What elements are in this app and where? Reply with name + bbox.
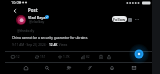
staticText: 10:09 xyxy=(11,0,21,5)
staticText: 9:11 AM · Sep 23, 2024 · xyxy=(12,43,49,47)
staticText: Follow xyxy=(113,17,126,22)
button[interactable]: Bookmark xyxy=(99,53,103,60)
button[interactable]: More options xyxy=(133,16,140,23)
button[interactable]: Notifications xyxy=(106,64,117,72)
staticText: 151 xyxy=(40,55,46,59)
staticText: 12 xyxy=(16,55,20,59)
button[interactable]: Search xyxy=(41,64,52,72)
button[interactable]: Follow xyxy=(112,16,127,22)
button[interactable]: Like xyxy=(58,53,70,60)
staticText: Views xyxy=(58,43,68,47)
staticText: 1.7K xyxy=(63,55,70,59)
staticText: @thedodly xyxy=(17,28,35,33)
button[interactable]: Share xyxy=(107,53,111,60)
staticText: 82 xyxy=(86,55,90,59)
button[interactable]: Grok xyxy=(127,17,132,22)
staticText: China cannot be a security guarantor for… xyxy=(12,35,89,39)
button[interactable]: Grok xyxy=(84,64,95,72)
staticText: Post xyxy=(28,7,38,13)
button[interactable]: Profile picture xyxy=(16,15,26,25)
button[interactable]: Communities xyxy=(63,64,74,72)
button[interactable]: Compose post xyxy=(131,46,147,62)
staticText: 12.4K xyxy=(49,43,58,47)
staticText: @vladbay xyxy=(29,19,45,24)
button[interactable]: Messages xyxy=(128,64,139,72)
button[interactable]: Repost xyxy=(35,53,46,60)
button[interactable]: Reply xyxy=(11,53,20,60)
button[interactable]: Back xyxy=(10,6,20,16)
staticText: Vlad Bayar xyxy=(28,15,48,20)
button[interactable]: Views xyxy=(81,53,90,60)
button[interactable]: Home xyxy=(20,64,31,72)
